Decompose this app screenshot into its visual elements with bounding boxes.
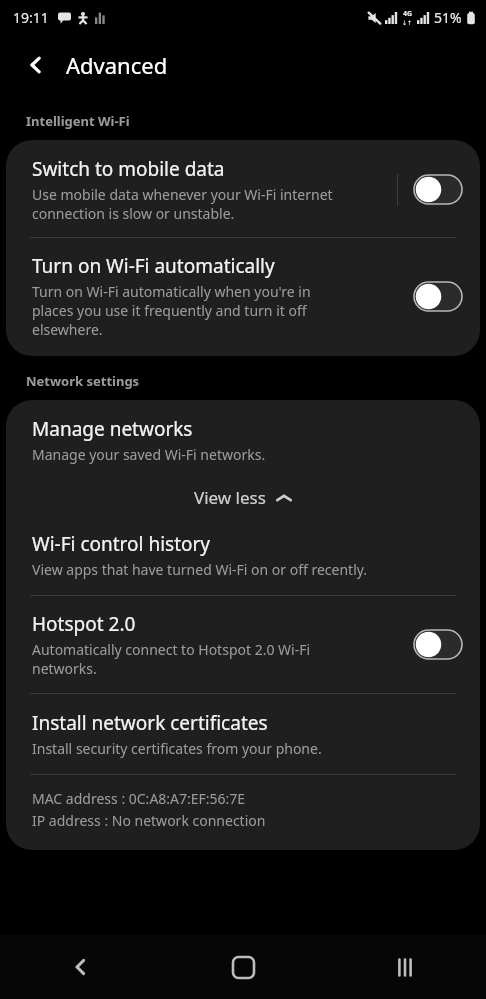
staticText: MAC address : 0C:A8:A7:EF:56:7E [32,789,246,808]
staticText: Intelligent Wi-Fi [26,112,130,130]
staticText: Advanced [66,50,168,80]
button[interactable]: Hotspot 2.0 [410,624,466,665]
staticText: Turn on Wi-Fi automatically [32,253,275,279]
button[interactable]: Install network certificates [6,694,480,774]
button[interactable]: Switch to mobile data [6,140,480,237]
button[interactable]: Home [162,935,324,999]
staticText: 19:11 [13,8,49,27]
button[interactable]: Switch to mobile data [410,169,466,210]
button[interactable]: Wi-Fi control history [6,523,480,595]
button[interactable]: Manage networks [6,400,480,472]
button[interactable]: Recent apps [324,935,486,999]
staticText: Use mobile data whenever your Wi-Fi inte… [32,185,333,223]
staticText: Switch to mobile data [32,156,225,182]
staticText: Wi-Fi control history [32,531,211,557]
button[interactable]: Back [14,43,58,87]
button[interactable]: Turn on Wi-Fi automatically [410,276,466,317]
staticText: View less [194,486,266,509]
button[interactable]: Turn on Wi-Fi automatically [6,238,480,356]
staticText: 51% [434,8,462,27]
staticText: Install security certificates from your … [32,739,322,758]
staticText: 4G [403,9,413,19]
staticText: IP address : No network connection [32,811,266,830]
staticText: Turn on Wi-Fi automatically when you're … [32,282,311,339]
staticText: Manage networks [32,416,193,442]
staticText: Install network certificates [32,710,268,736]
button[interactable]: Back [0,935,162,999]
staticText: Manage your saved Wi-Fi networks. [32,445,266,464]
staticText: ↓↑ [402,19,413,26]
button[interactable]: View less [6,472,480,523]
staticText: View apps that have turned Wi-Fi on or o… [32,560,368,579]
staticText: Hotspot 2.0 [32,611,136,637]
staticText: Automatically connect to Hotspot 2.0 Wi-… [32,640,311,678]
button[interactable]: Hotspot 2.0 [6,596,480,693]
staticText: Network settings [26,372,140,390]
